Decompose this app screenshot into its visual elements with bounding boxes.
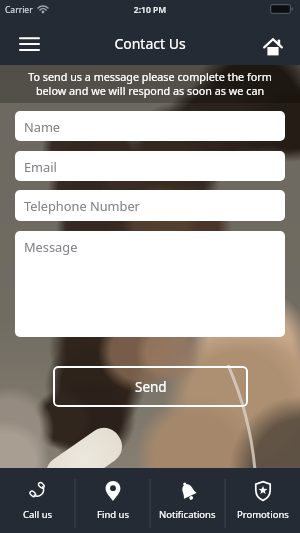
button[interactable]: Send [53, 366, 248, 407]
button[interactable] [254, 31, 292, 61]
button[interactable]: Promotions [225, 468, 300, 533]
button[interactable]: Notifications [150, 468, 225, 533]
button[interactable]: Find us [75, 468, 150, 533]
staticText: Message [24, 238, 78, 255]
staticText: 2:10 PM [0, 4, 300, 16]
staticText: Find us [97, 508, 129, 521]
button[interactable]: Message [15, 231, 285, 337]
staticText: Telephone Number [24, 197, 140, 214]
staticText: Name [24, 118, 61, 135]
button[interactable]: Telephone Number [15, 190, 285, 221]
button[interactable]: Name [15, 111, 285, 141]
staticText: Send [135, 378, 167, 396]
button[interactable]: Call us [0, 468, 75, 533]
staticText: Notifications [159, 508, 216, 521]
staticText: Promotions [237, 508, 289, 521]
button[interactable]: Email [15, 151, 285, 181]
staticText: Email [24, 158, 57, 175]
button[interactable] [12, 33, 48, 59]
staticText: Carrier [5, 4, 33, 16]
staticText: Call us [23, 508, 53, 521]
staticText: To send us a message please complete the… [28, 69, 272, 99]
staticText: Contact Us [0, 34, 300, 53]
